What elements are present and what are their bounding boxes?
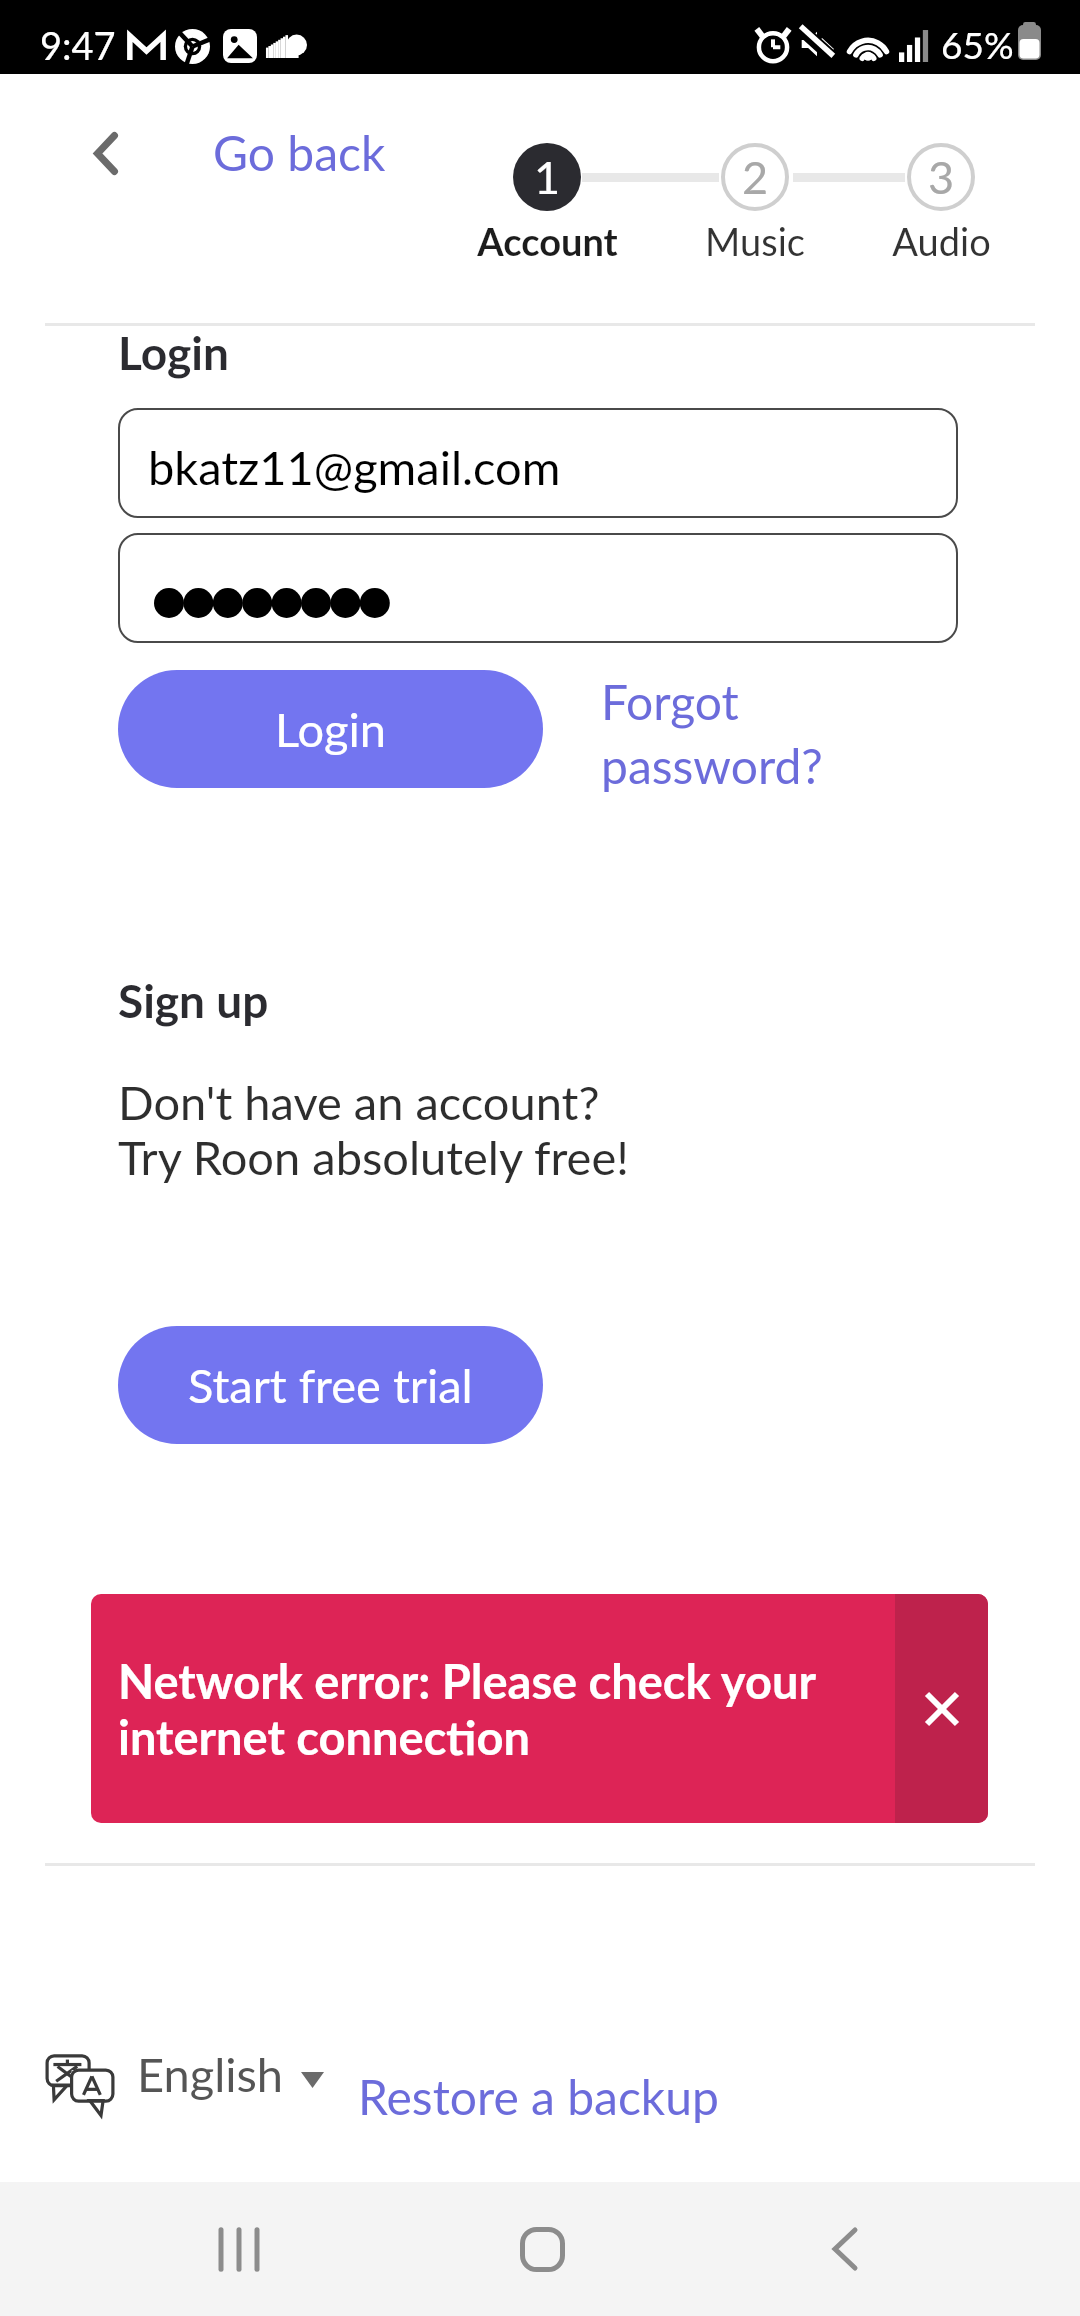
staticText: 2	[742, 150, 769, 204]
staticText: 9:47	[40, 22, 116, 68]
button[interactable]: Restore a backup	[358, 2068, 719, 2126]
button[interactable]: 2	[645, 143, 865, 264]
staticText: 1	[534, 150, 561, 204]
staticText: bkatz11@gmail.com	[148, 439, 561, 495]
button[interactable]: 3	[831, 143, 1051, 264]
button[interactable]: Start free trial	[118, 1326, 543, 1444]
button[interactable]: Recent apps	[170, 2182, 310, 2316]
staticText: Sign up	[118, 973, 269, 1028]
button[interactable]: Go back	[70, 112, 405, 196]
staticText: 65%	[941, 22, 1014, 66]
staticText: Login	[275, 701, 386, 757]
staticText: Audio	[892, 218, 991, 264]
staticText: Music	[705, 218, 805, 264]
button[interactable]: 1	[437, 143, 657, 264]
button[interactable]: Login	[118, 670, 543, 788]
staticText: Network error: Please check your interne…	[118, 1653, 816, 1765]
staticText: Login	[118, 325, 229, 380]
button[interactable]: English	[40, 2040, 335, 2130]
button[interactable]: Forgot password?	[601, 673, 823, 794]
button[interactable]: Back	[775, 2182, 915, 2316]
button[interactable]: Dismiss error	[895, 1594, 988, 1823]
button[interactable]: bkatz11@gmail.com	[118, 408, 958, 518]
button[interactable]	[118, 533, 958, 643]
button[interactable]: Home	[472, 2182, 612, 2316]
staticText: Don't have an account? Try Roon absolute…	[118, 1074, 629, 1185]
staticText: English	[137, 2046, 284, 2102]
staticText: Go back	[213, 124, 386, 182]
staticText: 3	[928, 150, 955, 204]
staticText: Start free trial	[188, 1357, 473, 1413]
staticText: Account	[477, 218, 618, 264]
